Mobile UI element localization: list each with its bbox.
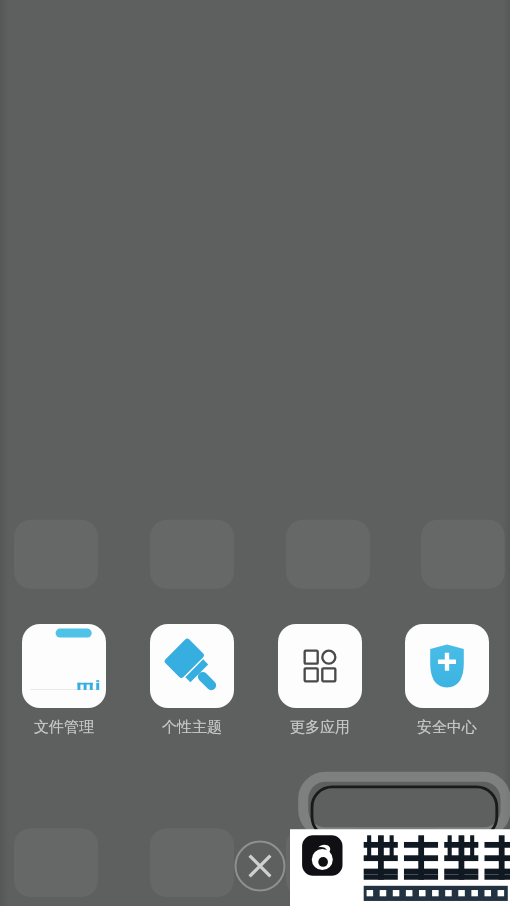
button[interactable]: 文件管理 [0, 624, 128, 737]
button[interactable]: 更多应用 [256, 624, 384, 737]
button[interactable]: Close [234, 840, 286, 892]
staticText: 更多应用 [290, 718, 350, 737]
staticText: 文件管理 [34, 718, 94, 737]
staticText: 安全中心 [417, 718, 477, 737]
staticText: 个性主题 [162, 718, 222, 737]
button[interactable]: 个性主题 [128, 624, 256, 737]
button[interactable]: 安全中心 [384, 624, 510, 737]
